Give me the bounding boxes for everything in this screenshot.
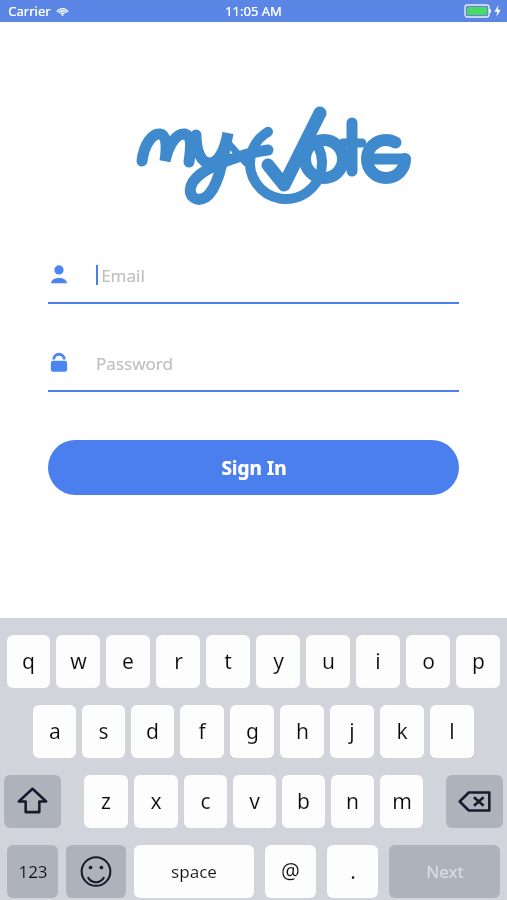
staticText: v [249, 787, 260, 816]
button[interactable]: y [256, 635, 300, 688]
staticText: 123 [18, 860, 48, 883]
button[interactable]: Password [48, 346, 459, 392]
button[interactable]: l [430, 705, 474, 758]
button[interactable]: z [84, 775, 128, 828]
button[interactable]: n [331, 775, 374, 828]
button[interactable]: b [282, 775, 325, 828]
staticText: m [392, 787, 412, 816]
button[interactable]: d [131, 705, 174, 758]
staticText: i [375, 647, 381, 676]
staticText: j [349, 717, 355, 746]
button[interactable]: o [406, 635, 450, 688]
button[interactable]: m [380, 775, 423, 828]
button[interactable]: h [280, 705, 324, 758]
staticText: . [350, 857, 356, 886]
staticText: o [422, 647, 435, 676]
staticText: r [174, 647, 183, 676]
button[interactable]: c [184, 775, 227, 828]
button[interactable]: 123 [7, 845, 58, 898]
staticText: c [200, 787, 211, 816]
button[interactable]: Sign In [48, 440, 459, 495]
staticText: @ [281, 857, 300, 886]
staticText: x [150, 787, 162, 816]
button[interactable]: p [456, 635, 500, 688]
staticText: k [396, 717, 408, 746]
button[interactable]: Emoji [66, 845, 126, 898]
staticText: z [101, 787, 111, 816]
button[interactable]: j [330, 705, 374, 758]
staticText: f [198, 717, 206, 746]
button[interactable]: x [134, 775, 178, 828]
staticText: s [98, 717, 109, 746]
staticText: t [224, 647, 232, 676]
button[interactable]: e [106, 635, 150, 688]
button[interactable]: g [230, 705, 274, 758]
staticText: a [49, 717, 61, 746]
button[interactable]: space [134, 845, 254, 898]
staticText: Sign In [221, 455, 287, 481]
button[interactable]: q [7, 635, 50, 688]
button[interactable]: Shift [4, 775, 61, 828]
staticText: l [449, 717, 455, 746]
button[interactable]: w [56, 635, 100, 688]
staticText: y [273, 647, 284, 676]
button[interactable]: s [82, 705, 125, 758]
button[interactable]: v [233, 775, 276, 828]
staticText: Password [96, 352, 173, 375]
staticText: q [22, 647, 35, 676]
button[interactable]: i [356, 635, 400, 688]
button[interactable]: @ [265, 845, 316, 898]
button[interactable]: t [206, 635, 250, 688]
button[interactable]: k [380, 705, 424, 758]
staticText: Carrier [8, 2, 51, 20]
staticText: g [246, 717, 259, 746]
staticText: u [322, 647, 335, 676]
staticText: d [146, 717, 159, 746]
staticText: space [171, 860, 217, 883]
button[interactable]: a [33, 705, 76, 758]
button[interactable]: . [327, 845, 378, 898]
button[interactable]: Delete [446, 775, 503, 828]
button[interactable]: u [306, 635, 350, 688]
staticText: Email [101, 264, 145, 287]
staticText: e [122, 647, 134, 676]
staticText: Next [426, 860, 464, 883]
staticText: h [296, 717, 309, 746]
button[interactable]: Next [389, 845, 500, 898]
staticText: b [297, 787, 310, 816]
staticText: 11:05 AM [225, 2, 282, 20]
button[interactable]: f [180, 705, 224, 758]
staticText: w [70, 647, 87, 676]
button[interactable]: Email [48, 258, 459, 304]
staticText: n [346, 787, 359, 816]
button[interactable]: r [156, 635, 200, 688]
staticText: p [472, 647, 485, 676]
